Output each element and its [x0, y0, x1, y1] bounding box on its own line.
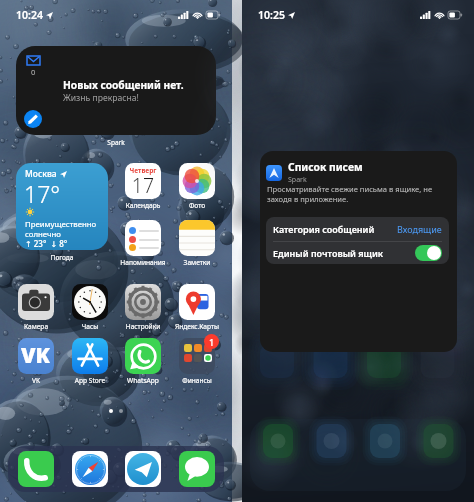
button[interactable] — [125, 284, 161, 320]
button[interactable] — [179, 284, 215, 320]
staticText: Погода — [16, 253, 108, 262]
button[interactable] — [179, 220, 215, 256]
staticText: Категория сообщений — [273, 223, 375, 235]
staticText: 10:25 — [258, 8, 285, 22]
staticText: Spark — [288, 175, 307, 185]
button[interactable] — [125, 451, 161, 487]
staticText: VK — [21, 341, 51, 370]
staticText: 1 — [209, 336, 215, 348]
button[interactable] — [179, 451, 215, 487]
staticText: Москва — [25, 168, 57, 180]
staticText: 17 — [125, 172, 161, 199]
button[interactable] — [125, 338, 161, 374]
staticText: Заметки — [167, 258, 227, 267]
staticText: ↑ 23° ↓ 8° — [25, 238, 68, 249]
staticText: Список писем — [288, 160, 363, 174]
staticText: VK — [6, 376, 66, 385]
staticText: Входящие — [397, 223, 442, 235]
button[interactable]: 0 — [16, 46, 216, 135]
staticText: Единый почтовый ящик — [273, 247, 384, 259]
button[interactable] — [125, 220, 161, 256]
button[interactable]: VK — [18, 338, 54, 374]
staticText: Преимущественно солнечно — [25, 219, 97, 239]
staticText: App Store — [60, 376, 120, 385]
staticText: Настройки — [113, 322, 173, 331]
staticText: Часы — [60, 322, 120, 331]
button[interactable] — [18, 284, 54, 320]
staticText: Календарь — [113, 201, 173, 210]
staticText: Камера — [6, 322, 66, 331]
button[interactable]: Единый почтовый ящик — [415, 245, 442, 261]
button[interactable]: Москва — [16, 163, 108, 250]
staticText: Просматривайте свежие письма в ящике, не… — [267, 184, 433, 204]
button[interactable]: Четверг — [125, 163, 161, 199]
staticText: Новых сообщений нет. — [63, 78, 184, 92]
staticText: Spark — [64, 138, 168, 147]
staticText: 0 — [31, 67, 36, 77]
staticText: Напоминания — [113, 258, 173, 267]
button[interactable] — [18, 451, 54, 487]
staticText: WhatsApp — [113, 376, 173, 385]
staticText: Фото — [167, 201, 227, 210]
staticText: 17° — [24, 178, 61, 209]
button[interactable] — [72, 284, 108, 320]
staticText: Жизнь прекрасна! — [63, 92, 139, 104]
staticText: Финансы — [167, 376, 227, 385]
staticText: Яндекс.Карты — [167, 322, 227, 331]
button[interactable] — [72, 338, 108, 374]
button[interactable]: Написать письмо — [24, 110, 42, 128]
button[interactable] — [179, 338, 215, 374]
button[interactable] — [179, 163, 215, 199]
staticText: 10:24 — [16, 8, 43, 22]
button[interactable] — [72, 451, 108, 487]
staticText: Четверг — [125, 166, 161, 175]
button[interactable]: Категория сообщений — [266, 217, 449, 241]
